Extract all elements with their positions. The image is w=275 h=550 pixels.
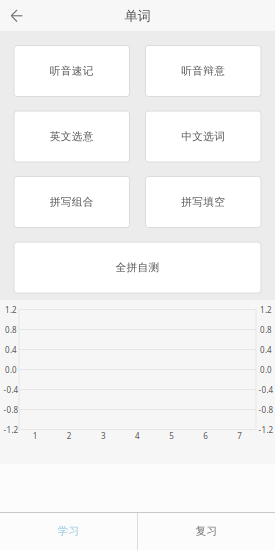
staticText: -0.8: [3, 405, 18, 415]
button[interactable]: 复习: [138, 512, 275, 550]
staticText: 3: [101, 430, 106, 441]
button[interactable]: 听音辩意: [145, 45, 261, 96]
staticText: 单词: [124, 8, 150, 24]
staticText: -0.4: [3, 385, 18, 395]
staticText: 0.0: [260, 365, 272, 375]
staticText: 7: [237, 430, 242, 441]
staticText: 全拼自测: [115, 261, 159, 274]
staticText: -1.2: [258, 425, 273, 435]
button[interactable]: 听音速记: [14, 45, 129, 96]
staticText: 听音辩意: [181, 64, 225, 77]
staticText: 5: [169, 430, 174, 441]
staticText: 6: [203, 430, 208, 441]
button[interactable]: 拼写组合: [14, 176, 129, 227]
button[interactable]: 学习: [0, 512, 137, 550]
staticText: 听音速记: [50, 64, 94, 77]
button[interactable]: 英文选意: [14, 111, 129, 162]
staticText: 拼写填空: [181, 195, 225, 208]
staticText: 1.2: [5, 305, 17, 315]
staticText: 0.8: [5, 325, 17, 335]
staticText: 0.8: [260, 325, 272, 335]
staticText: 2: [67, 430, 72, 441]
staticText: -1.2: [3, 425, 18, 435]
staticText: 0.4: [5, 345, 17, 355]
button[interactable]: 全拼自测: [14, 242, 261, 293]
staticText: 复习: [195, 524, 217, 537]
staticText: -0.8: [258, 405, 273, 415]
staticText: 学习: [57, 524, 79, 537]
staticText: 中文选词: [181, 130, 225, 143]
staticText: -0.4: [258, 385, 273, 395]
staticText: 1.2: [260, 305, 272, 315]
button[interactable]: 中文选词: [145, 111, 261, 162]
staticText: 0.0: [5, 365, 17, 375]
staticText: 英文选意: [50, 130, 94, 143]
staticText: 0.4: [260, 345, 272, 355]
staticText: 4: [135, 430, 140, 441]
button[interactable]: Back: [0, 0, 36, 31]
staticText: 1: [33, 430, 38, 441]
button[interactable]: 拼写填空: [145, 176, 261, 227]
staticText: 拼写组合: [50, 195, 94, 208]
